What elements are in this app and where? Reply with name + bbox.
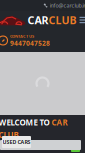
button[interactable]: info@carclub.in (43, 2, 85, 9)
staticText: CLUB (48, 13, 76, 27)
button[interactable]: Accept (71, 148, 80, 152)
staticText: CLUB (0, 130, 18, 140)
button[interactable]: CONTACT US (0, 29, 85, 52)
staticText: CONTACT US (10, 33, 34, 39)
staticText: info@carclub.in (49, 2, 85, 9)
staticText: USED CARS (2, 138, 30, 146)
button[interactable]: Menu (76, 13, 85, 27)
button[interactable]: USED CARS (2, 136, 31, 148)
staticText: 9447047528 (10, 39, 50, 48)
staticText: WELCOME TO (0, 117, 49, 128)
staticText: CAR (27, 13, 48, 27)
staticText: CAR (51, 117, 67, 128)
